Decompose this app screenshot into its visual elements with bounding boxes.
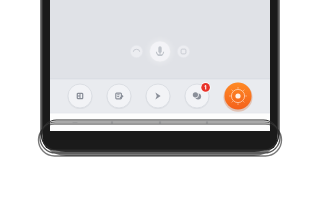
button[interactable]: Messages, 1 new bbox=[185, 84, 209, 108]
button[interactable]: Notes bbox=[107, 84, 131, 108]
button[interactable]: Apps bbox=[68, 84, 92, 108]
button[interactable]: Voice search bbox=[148, 38, 175, 65]
button[interactable]: Record bbox=[224, 82, 252, 110]
button[interactable]: Send bbox=[146, 84, 170, 108]
